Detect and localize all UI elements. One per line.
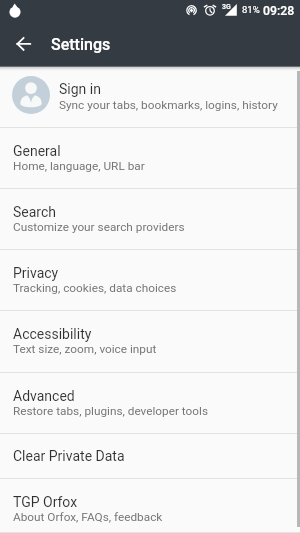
button[interactable]: Search [0, 189, 300, 250]
staticText: Accessibility [13, 326, 92, 342]
button[interactable]: Privacy [0, 250, 300, 311]
staticText: Restore tabs, plugins, developer tools [13, 404, 209, 418]
button[interactable]: Clear Private Data [0, 434, 300, 479]
button[interactable]: Sign in [0, 66, 300, 128]
button[interactable]: TGP Orfox [0, 479, 300, 533]
staticText: Tracking, cookies, data choices [13, 281, 177, 295]
staticText: Clear Private Data [13, 448, 125, 464]
staticText: Settings [51, 35, 111, 54]
button[interactable]: General [0, 128, 300, 189]
button[interactable]: Back [3, 23, 44, 64]
button[interactable]: Advanced [0, 373, 300, 434]
staticText: Home, language, URL bar [13, 159, 145, 173]
staticText: Sync your tabs, bookmarks, logins, histo… [59, 98, 278, 112]
staticText: 3G [222, 3, 231, 11]
staticText: Customize your search providers [13, 220, 185, 234]
staticText: About Orfox, FAQs, feedback [13, 510, 163, 524]
button[interactable]: Accessibility [0, 311, 300, 373]
staticText: Text size, zoom, voice input [13, 342, 157, 356]
staticText: Search [13, 204, 57, 220]
staticText: 09:28 [263, 4, 295, 18]
staticText: 81% [242, 4, 260, 15]
staticText: General [13, 143, 61, 159]
staticText: Privacy [13, 265, 59, 281]
staticText: Sign in [59, 81, 101, 97]
staticText: Advanced [13, 388, 75, 404]
staticText: TGP Orfox [13, 494, 78, 510]
